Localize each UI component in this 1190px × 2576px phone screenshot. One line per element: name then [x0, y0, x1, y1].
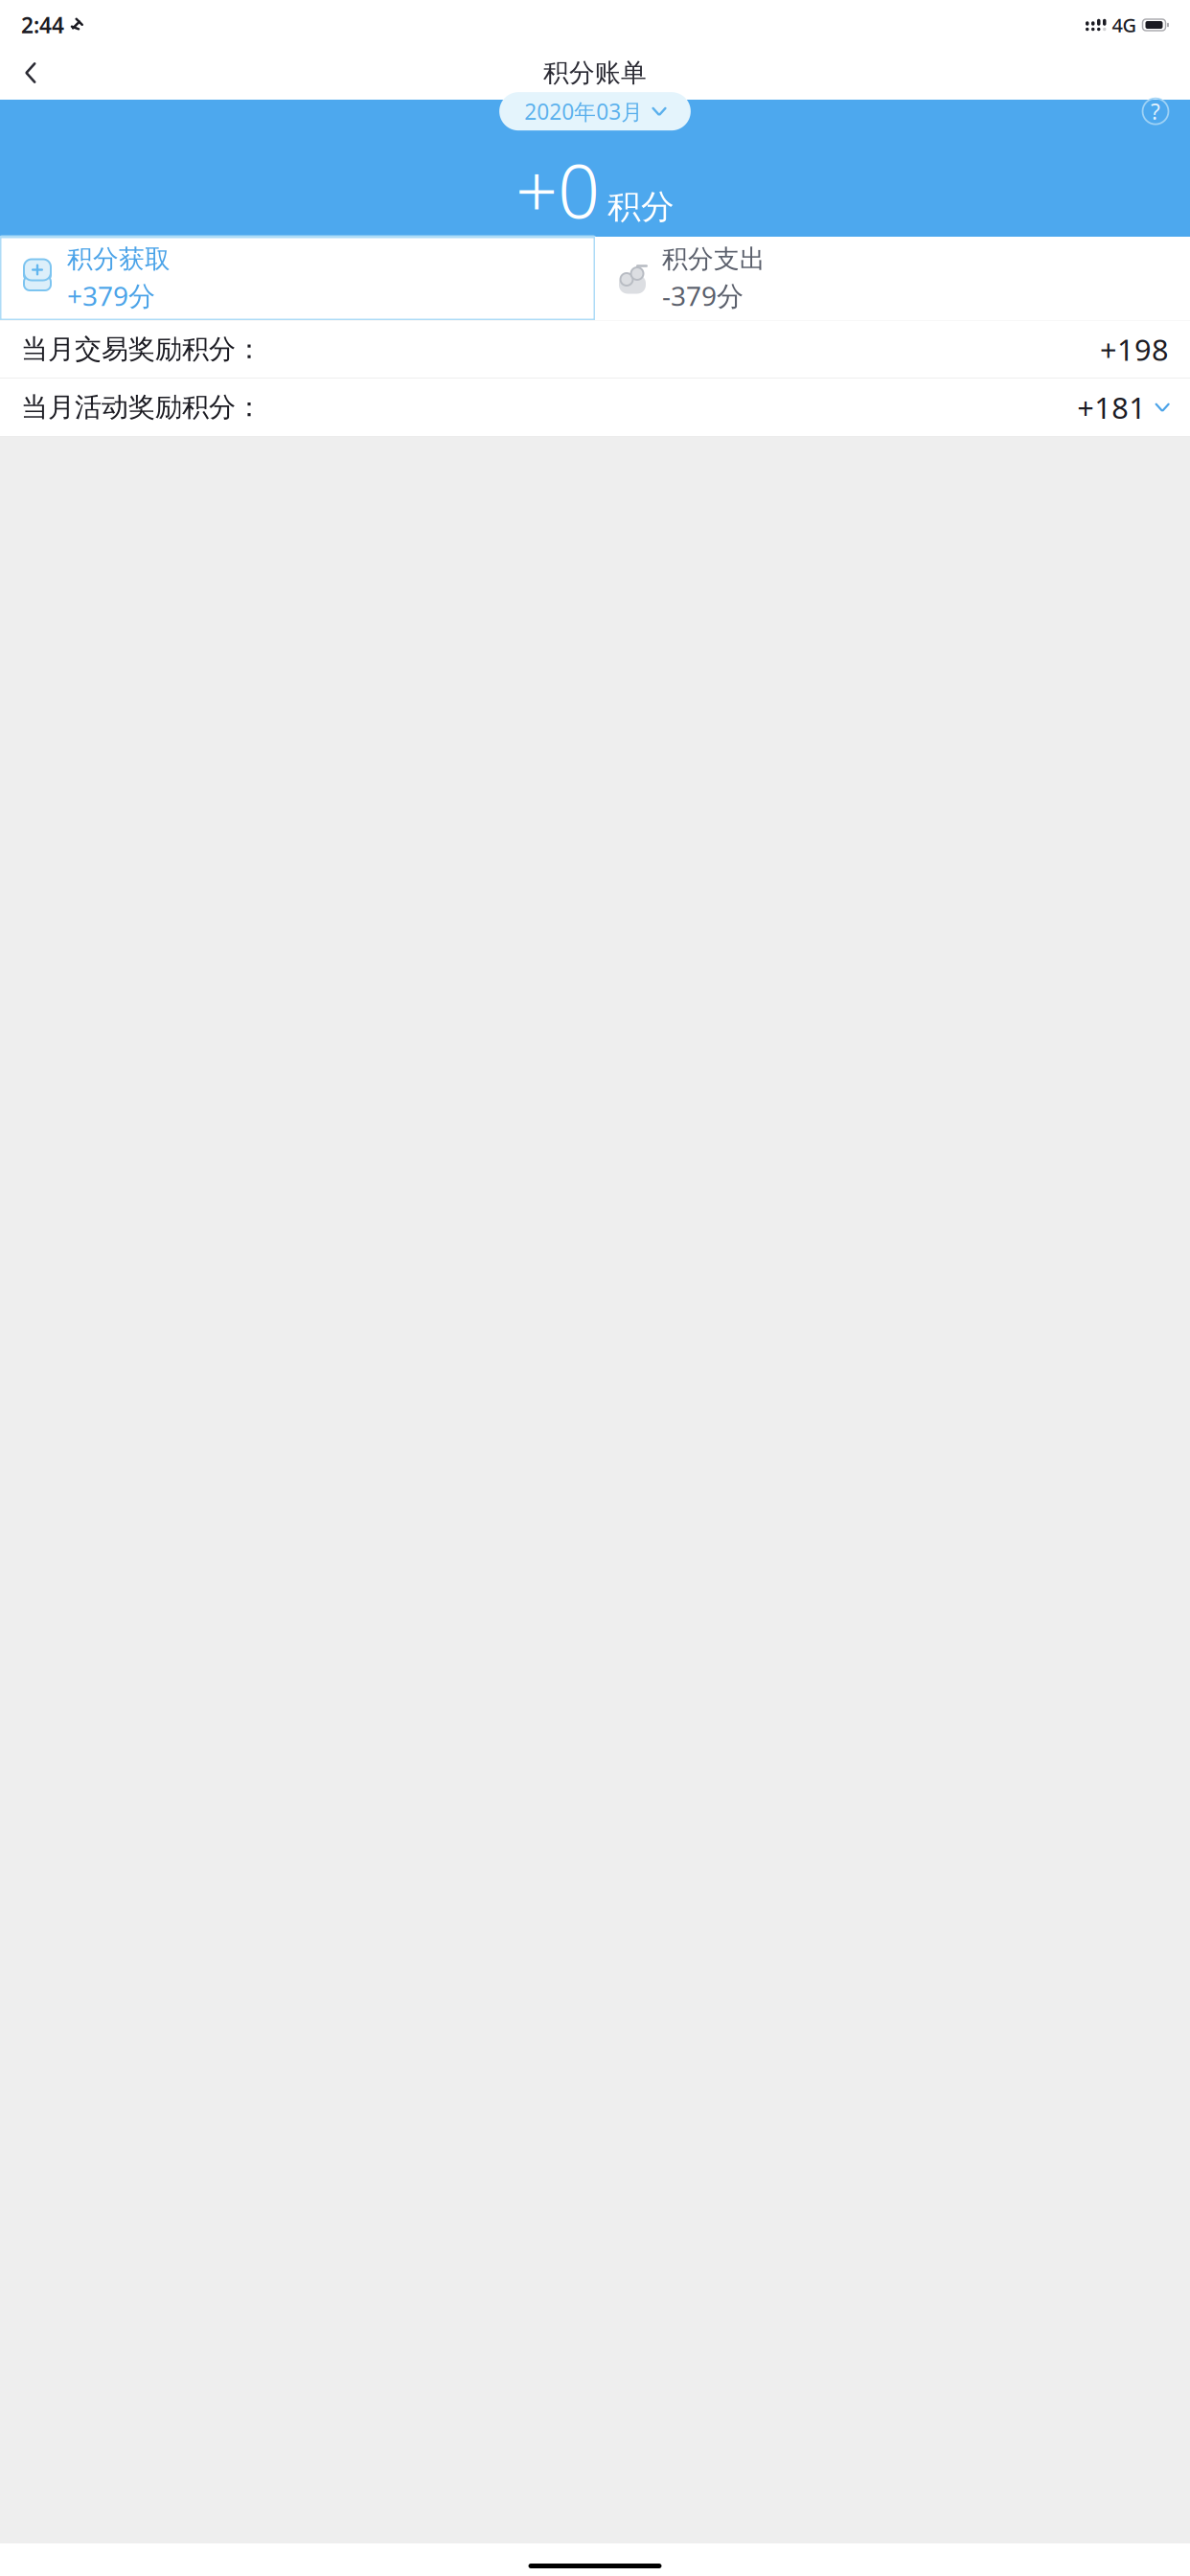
- staticText: 4G: [1112, 12, 1137, 38]
- button[interactable]: 当月交易奖励积分：: [0, 321, 1190, 378]
- staticText: +0: [515, 140, 600, 239]
- staticText: 积分: [607, 187, 675, 227]
- staticText: 当月活动奖励积分：: [21, 391, 263, 424]
- staticText: -379分: [662, 278, 744, 313]
- button[interactable]: 积分支出: [595, 237, 1190, 320]
- button[interactable]: 积分获取: [0, 237, 595, 320]
- staticText: 积分支出: [662, 243, 766, 275]
- staticText: +198: [1100, 330, 1169, 369]
- staticText: 2020年03月: [524, 97, 643, 126]
- staticText: 当月交易奖励积分：: [21, 333, 263, 366]
- staticText: +379分: [67, 278, 155, 313]
- staticText: 积分获取: [67, 243, 171, 275]
- staticText: ?: [1151, 97, 1160, 126]
- staticText: +181: [1077, 388, 1146, 427]
- staticText: 积分账单: [543, 57, 647, 89]
- staticText: 2:44: [21, 10, 64, 39]
- button[interactable]: 当月活动奖励积分：: [0, 379, 1190, 436]
- button[interactable]: 2020年03月: [499, 92, 691, 131]
- button[interactable]: 返回: [8, 52, 54, 94]
- button[interactable]: 帮助: [1134, 90, 1177, 132]
